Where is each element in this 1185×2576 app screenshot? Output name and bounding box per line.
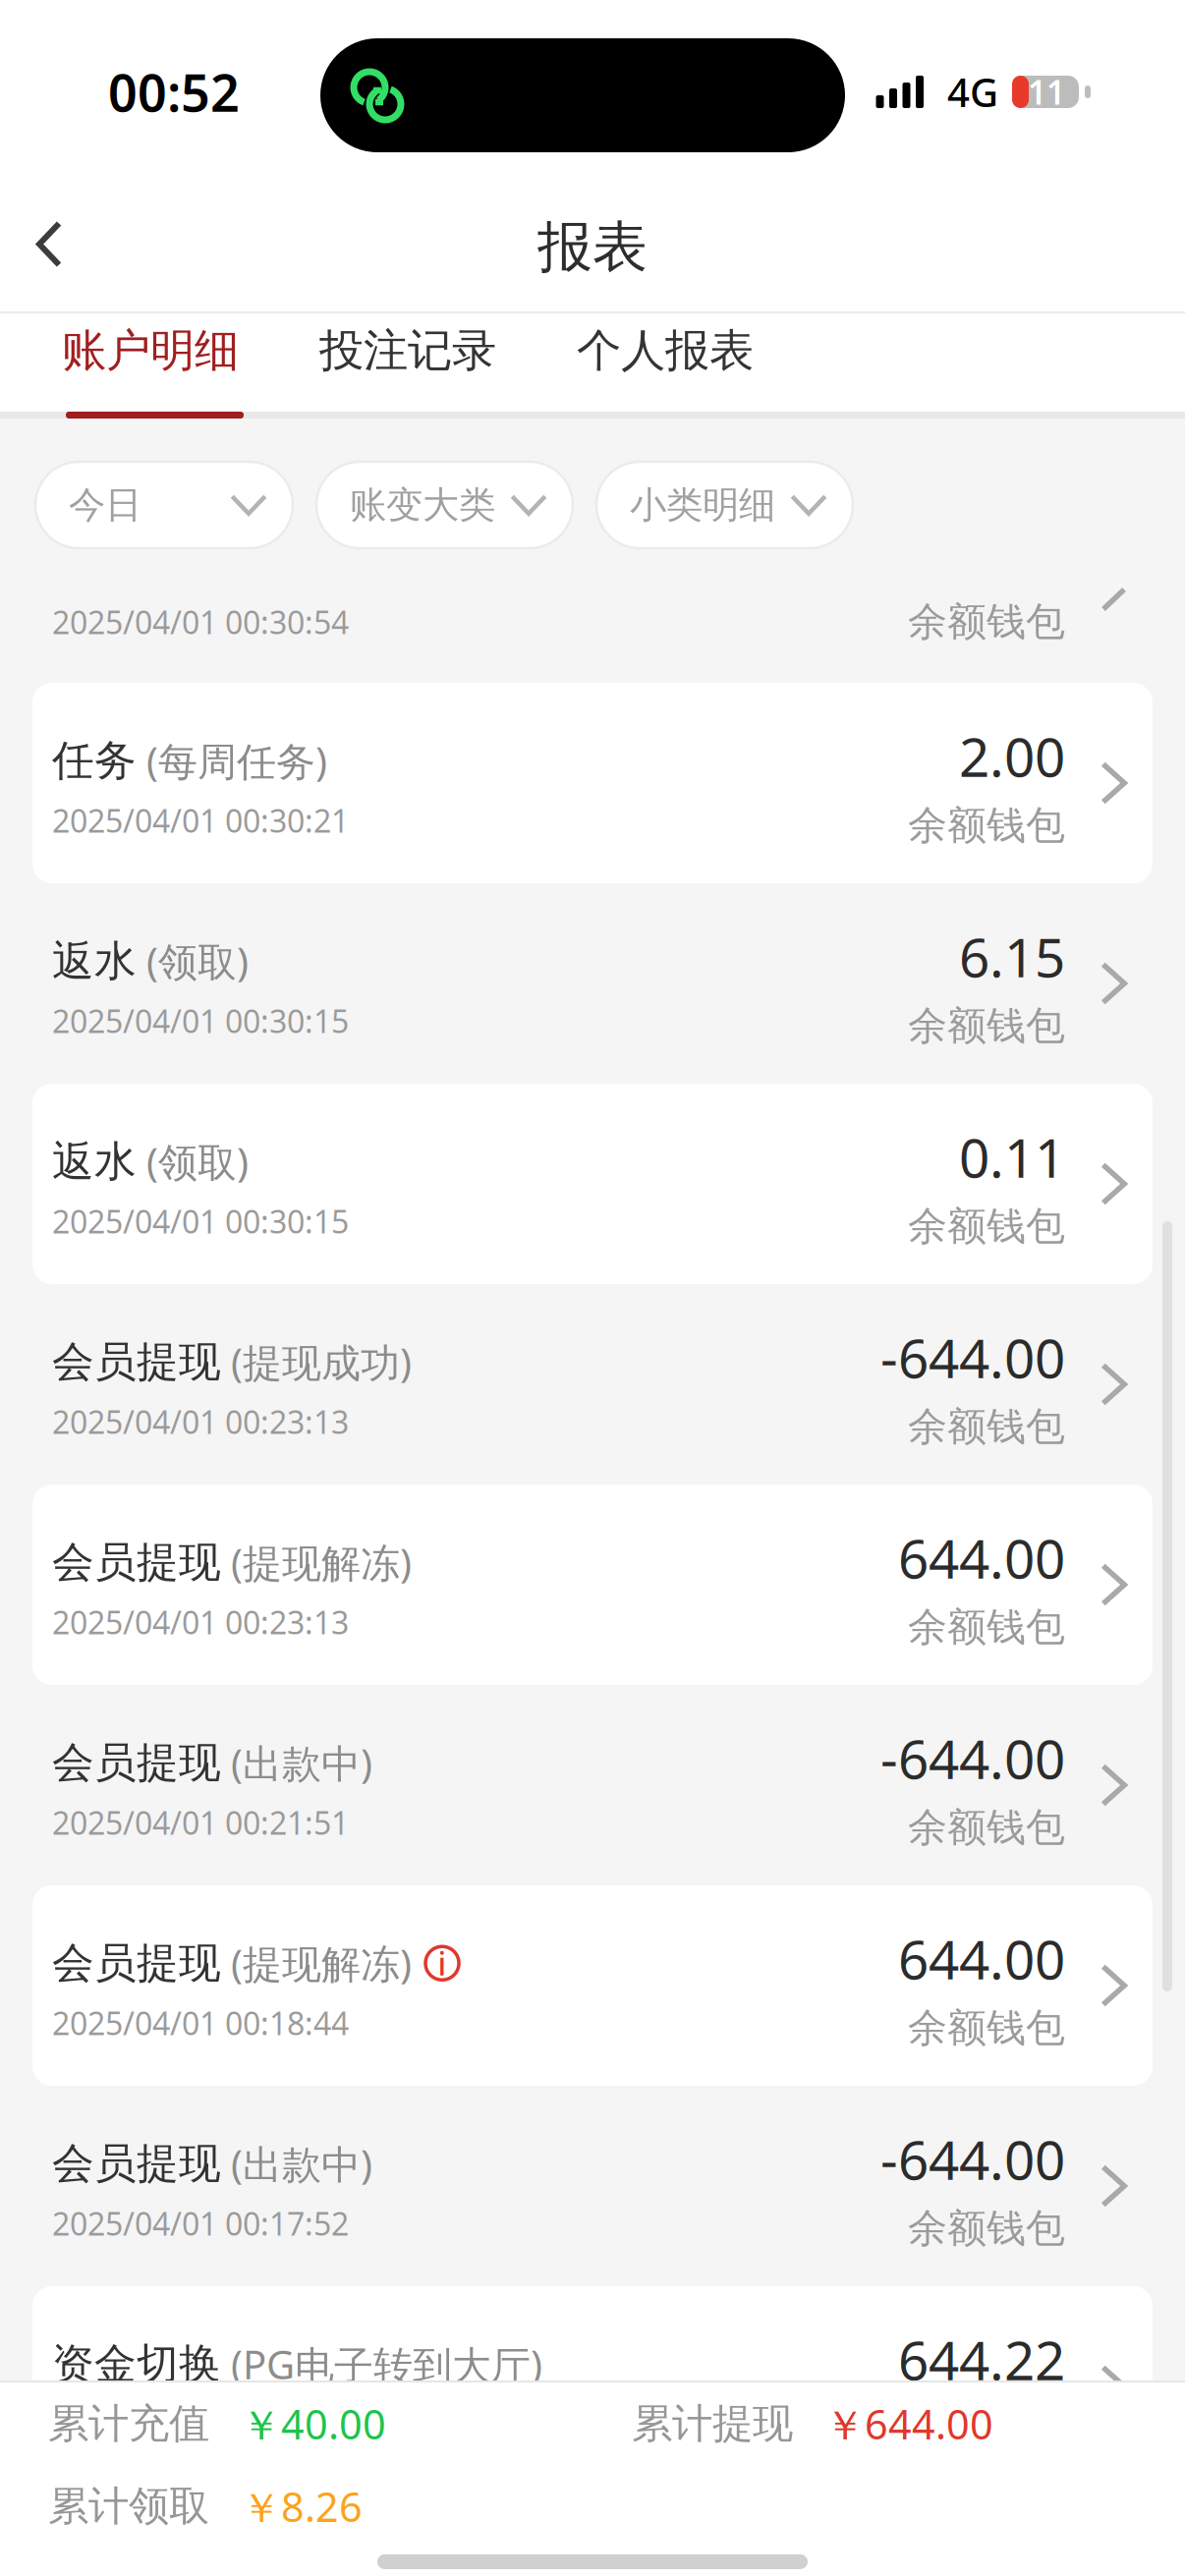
staticText: 2025/04/01 00:15:02: [52, 2403, 349, 2445]
staticText: (PG电子转到大厅): [221, 2338, 542, 2390]
staticText: 2025/04/01 00:21:51: [52, 1802, 349, 1843]
staticText: ￥644.00: [824, 2397, 993, 2451]
staticText: (提现解冻): [221, 1536, 412, 1588]
staticText: 644.00: [898, 1522, 1065, 1593]
staticText: 会员提现: [52, 2138, 221, 2189]
staticText: 00:52: [108, 58, 240, 126]
staticText: 6.15: [959, 921, 1065, 992]
staticText: 余额钱包: [908, 1202, 1065, 1250]
staticText: 余额钱包: [908, 598, 1065, 646]
button[interactable]: 今日: [35, 462, 293, 548]
staticText: 余额钱包: [908, 1603, 1065, 1651]
button[interactable]: 返水: [32, 883, 1153, 1084]
staticText: (出款中): [221, 1737, 372, 1789]
button[interactable]: 会员提现: [32, 1484, 1153, 1685]
staticText: 余额钱包: [908, 1803, 1065, 1852]
staticText: 今日: [69, 482, 141, 528]
staticText: 0.11: [959, 1121, 1065, 1192]
staticText: i: [438, 1942, 447, 1984]
staticText: 2025/04/01 00:30:15: [52, 1000, 349, 1042]
staticText: 累计提现: [632, 2399, 793, 2449]
staticText: 返水: [52, 1136, 137, 1187]
button[interactable]: 会员提现: [32, 1885, 1153, 2086]
staticText: 644.00: [898, 1923, 1065, 1994]
button[interactable]: 资金切换: [32, 2286, 1153, 2487]
button[interactable]: Back: [0, 166, 92, 322]
staticText: 会员提现: [52, 1937, 221, 1989]
staticText: ￥8.26: [241, 2479, 363, 2533]
staticText: 资金切换: [52, 2338, 221, 2390]
staticText: 会员提现: [52, 1537, 221, 1588]
staticText: 2025/04/01 00:18:44: [52, 2002, 349, 2044]
staticText: 2025/04/01 00:23:13: [52, 1601, 349, 1643]
staticText: 余额钱包: [908, 1002, 1065, 1050]
staticText: 账变大类: [350, 482, 495, 528]
staticText: (每周任务): [137, 735, 327, 787]
button[interactable]: 会员提现: [32, 1284, 1153, 1484]
button[interactable]: 小类明细: [596, 462, 853, 548]
staticText: 个人报表: [577, 323, 754, 378]
staticText: 余额钱包: [908, 801, 1065, 850]
staticText: 累计领取: [48, 2481, 209, 2531]
staticText: ￥40.00: [241, 2397, 386, 2451]
staticText: 投注记录: [319, 323, 496, 378]
staticText: 644.22: [898, 2324, 1065, 2395]
button[interactable]: 账变大类: [316, 462, 573, 548]
button[interactable]: 任务: [32, 683, 1153, 883]
staticText: 任务: [52, 735, 137, 786]
staticText: 账户明细: [62, 323, 239, 378]
button[interactable]: 会员提现: [32, 2086, 1153, 2286]
staticText: (领取): [137, 1135, 249, 1188]
staticText: 2025/04/01 00:30:54: [52, 601, 349, 643]
staticText: 余额钱包: [908, 2204, 1065, 2253]
button[interactable]: 账户明细: [0, 323, 279, 409]
staticText: 2.00: [959, 720, 1065, 792]
staticText: 11: [1028, 70, 1065, 114]
button[interactable]: 返水: [32, 1084, 1153, 1284]
staticText: 余额钱包: [908, 1403, 1065, 1451]
staticText: 会员提现: [52, 1336, 221, 1388]
staticText: -644.00: [880, 2123, 1065, 2195]
staticText: -644.00: [880, 1722, 1065, 1794]
staticText: 4G: [947, 66, 998, 118]
staticText: 返水: [52, 935, 137, 987]
staticText: 小类明细: [630, 482, 775, 528]
button[interactable]: 个人报表: [536, 323, 794, 409]
staticText: (出款中): [221, 2138, 372, 2190]
button[interactable]: 会员提现: [32, 1685, 1153, 1885]
staticText: 余额钱包: [908, 2405, 1065, 2453]
staticText: 累计充值: [48, 2399, 209, 2449]
staticText: 2025/04/01 00:30:15: [52, 1200, 349, 1242]
staticText: 报表: [537, 213, 648, 281]
staticText: -644.00: [880, 1322, 1065, 1393]
staticText: 2025/04/01 00:17:52: [52, 2202, 349, 2244]
staticText: (提现解冻): [221, 1937, 412, 1989]
staticText: 2025/04/01 00:23:13: [52, 1401, 349, 1443]
staticText: 余额钱包: [908, 2004, 1065, 2052]
button[interactable]: 投注记录: [279, 323, 536, 409]
staticText: 会员提现: [52, 1737, 221, 1788]
staticText: 2025/04/01 00:30:21: [52, 800, 349, 841]
staticText: (提现成功): [221, 1336, 412, 1388]
staticText: (领取): [137, 935, 249, 987]
